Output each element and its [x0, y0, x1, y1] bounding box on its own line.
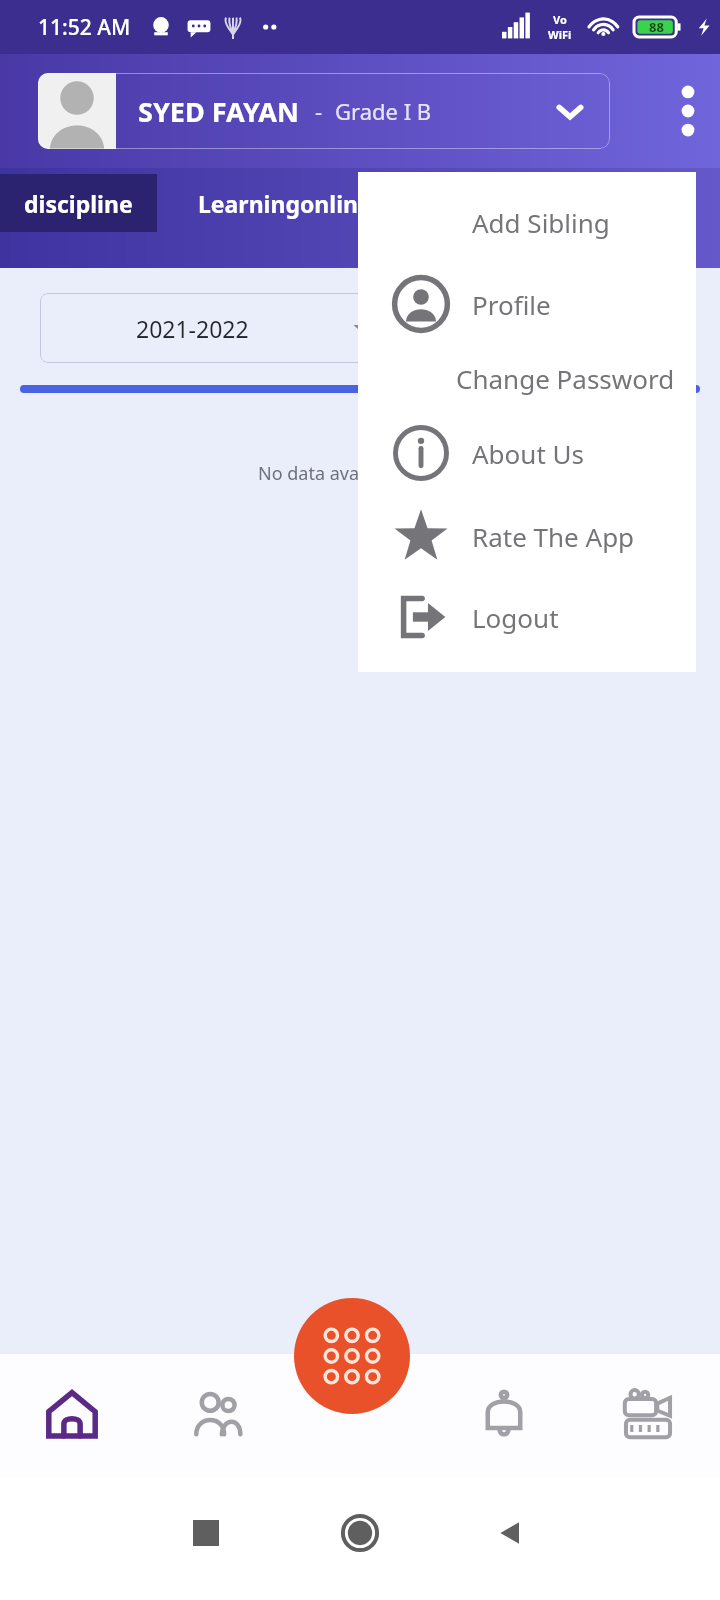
staticText: 2021-2022: [136, 313, 249, 344]
staticText: Add Sibling: [472, 205, 610, 240]
button[interactable]: Learningonlinee: [157, 174, 427, 232]
button[interactable]: Notifications: [432, 1354, 576, 1478]
staticText: Logout: [472, 600, 559, 635]
staticText: Learningonlinee: [198, 188, 386, 219]
staticText: Grade I B: [335, 96, 432, 126]
button[interactable]: Change Password: [358, 338, 696, 418]
staticText: discipline: [24, 188, 133, 219]
staticText: SYED FAYAN: [138, 93, 299, 130]
staticText: 88: [649, 18, 664, 36]
staticText: Rate The App: [472, 519, 635, 554]
button[interactable]: Add Sibling: [358, 182, 696, 262]
button[interactable]: People: [144, 1354, 288, 1478]
button[interactable]: Recent apps: [178, 1505, 234, 1561]
button[interactable]: Home: [332, 1505, 388, 1561]
button[interactable]: 2021-2022: [40, 293, 400, 363]
button[interactable]: Home: [0, 1354, 144, 1478]
button[interactable]: Profile: [358, 264, 696, 344]
staticText: 11:52 AM: [38, 13, 131, 42]
button[interactable]: Logout: [358, 577, 696, 657]
button[interactable]: Back: [482, 1505, 538, 1561]
staticText: Change Password: [456, 361, 675, 396]
button[interactable]: SYED FAYAN: [38, 73, 610, 149]
staticText: About Us: [472, 436, 585, 471]
staticText: Profile: [472, 287, 551, 322]
staticText: -: [315, 96, 323, 126]
button[interactable]: More options: [656, 54, 720, 168]
button[interactable]: discipline: [0, 174, 157, 232]
button[interactable]: Live: [576, 1354, 720, 1478]
staticText: WiFi: [548, 27, 572, 42]
staticText: Vo: [553, 12, 567, 27]
button[interactable]: About Us: [358, 413, 696, 493]
button[interactable]: Apps grid: [294, 1298, 410, 1414]
staticText: No data available: [258, 461, 405, 486]
button[interactable]: Rate The App: [358, 496, 696, 576]
